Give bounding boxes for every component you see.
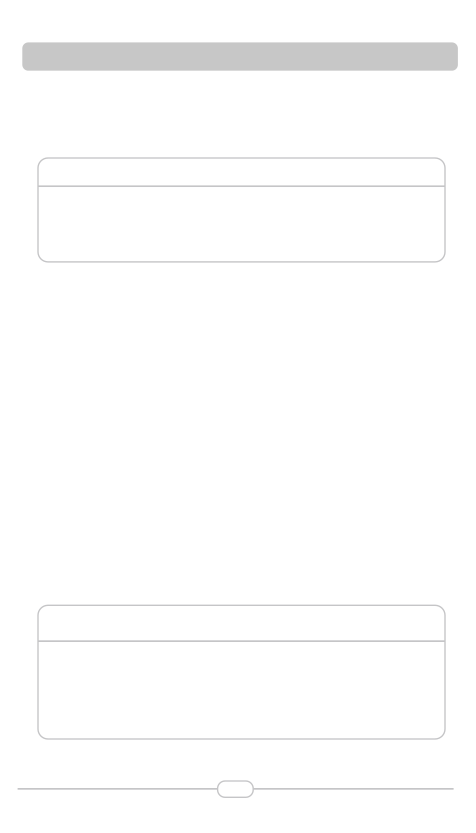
button[interactable]: Search	[22, 42, 458, 71]
button[interactable]: Handle	[218, 781, 253, 797]
button[interactable]: Section header	[38, 158, 445, 185]
button[interactable]: Section content	[38, 187, 445, 262]
button[interactable]: Section content	[38, 642, 445, 739]
button[interactable]: Section header	[38, 605, 445, 640]
